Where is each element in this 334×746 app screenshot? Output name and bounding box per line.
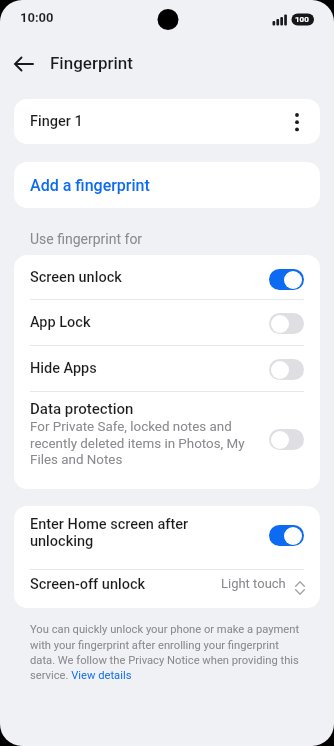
staticText: Light touch	[221, 576, 286, 591]
button[interactable]	[14, 506, 320, 569]
button[interactable]: You can quickly unlock your phone or mak…	[30, 623, 300, 682]
staticText: Enter Home screen after unlocking	[30, 516, 189, 550]
button[interactable]	[14, 255, 320, 300]
staticText: Add a fingerprint	[30, 176, 150, 195]
button[interactable]: Finger 1	[14, 99, 320, 144]
staticText: 10:00	[20, 10, 54, 25]
button[interactable]	[269, 429, 304, 450]
button[interactable]	[14, 570, 320, 608]
staticText: Hide Apps	[30, 360, 97, 377]
staticText: Screen unlock	[30, 269, 122, 286]
staticText: Fingerprint	[50, 53, 133, 73]
button[interactable]	[269, 313, 304, 334]
button[interactable]	[269, 525, 304, 546]
button[interactable]	[269, 359, 304, 380]
staticText: Finger 1	[30, 113, 83, 130]
staticText: Screen-off unlock	[30, 576, 146, 593]
staticText: 100	[295, 15, 309, 24]
staticText: App Lock	[30, 314, 91, 331]
button[interactable]	[269, 269, 304, 290]
staticText: Use fingerprint for	[30, 231, 143, 247]
staticText: Data protection	[30, 400, 134, 418]
staticText: You can quickly unlock your phone or mak…	[30, 623, 300, 682]
staticText: For Private Safe, locked notes and recen…	[30, 419, 245, 467]
button[interactable]: Add a fingerprint	[14, 162, 320, 208]
button[interactable]	[6, 51, 40, 77]
